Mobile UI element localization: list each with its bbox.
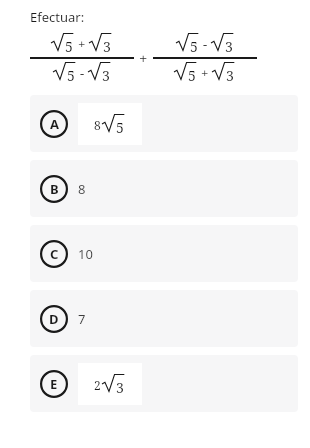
staticText: 7 <box>78 310 86 328</box>
staticText: E <box>50 375 58 393</box>
button[interactable]: D <box>30 290 298 347</box>
staticText: 5 <box>116 118 124 137</box>
staticText: + <box>201 64 209 82</box>
staticText: + <box>139 48 148 68</box>
staticText: 3 <box>226 66 234 85</box>
button[interactable]: E <box>30 355 298 412</box>
staticText: D <box>49 310 59 328</box>
staticText: 2 <box>94 377 101 393</box>
staticText: A <box>50 115 59 133</box>
staticText: + <box>78 35 86 53</box>
staticText: 10 <box>78 245 93 263</box>
button[interactable]: A <box>30 95 298 152</box>
staticText: 5 <box>67 66 75 85</box>
staticText: 3 <box>225 37 233 56</box>
staticText: B <box>50 180 59 198</box>
staticText: 3 <box>116 378 124 397</box>
staticText: 8 <box>78 180 86 198</box>
staticText: 8 <box>94 117 101 133</box>
staticText: 3 <box>103 37 111 56</box>
staticText: - <box>80 64 85 82</box>
staticText: 5 <box>65 37 73 56</box>
staticText: 5 <box>188 66 196 85</box>
staticText: 5 <box>190 37 198 56</box>
staticText: - <box>203 35 208 53</box>
button[interactable]: C <box>30 225 298 282</box>
staticText: Efectuar: <box>30 8 85 26</box>
staticText: 3 <box>102 66 110 85</box>
staticText: C <box>50 245 59 263</box>
button[interactable]: B <box>30 160 298 217</box>
